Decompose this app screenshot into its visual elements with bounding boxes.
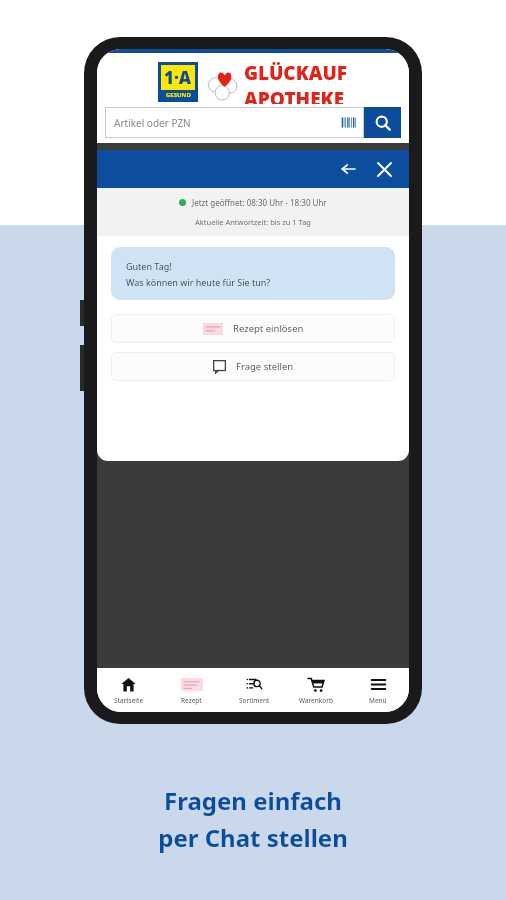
staticText: Startseite: [114, 696, 144, 705]
staticText: Jetzt geöffnet: 08:30 Uhr - 18:30 Uhr: [192, 197, 327, 208]
staticText: APOTHEKE: [244, 86, 345, 104]
button[interactable]: Frage stellen: [111, 352, 395, 381]
button[interactable]: Schließen: [372, 157, 396, 181]
button[interactable]: Zurück: [336, 157, 360, 181]
button[interactable]: Menü: [347, 668, 409, 712]
button[interactable]: Sortiment: [223, 668, 285, 712]
staticText: Warenkorb: [299, 696, 333, 705]
staticText: GESUND: [166, 91, 191, 99]
staticText: Frage stellen: [236, 360, 294, 373]
button[interactable]: Suchen: [364, 107, 401, 138]
staticText: GLÜCKAUF: [244, 60, 348, 86]
staticText: Rezept einlösen: [233, 322, 304, 335]
staticText: Fragen einfach: [164, 784, 342, 817]
button[interactable]: Rezept: [160, 668, 223, 712]
staticText: Artikel oder PZN: [114, 116, 191, 130]
staticText: Sortiment: [239, 696, 270, 705]
staticText: per Chat stellen: [158, 821, 348, 854]
staticText: Was können wir heute für Sie tun?: [126, 276, 271, 288]
staticText: Rezept: [181, 696, 202, 705]
button[interactable]: Rezept einlösen: [111, 314, 395, 343]
button[interactable]: Startseite: [97, 668, 160, 712]
staticText: Aktuelle Antwortzeit: bis zu 1 Tag: [195, 217, 311, 227]
button[interactable]: Warenkorb: [285, 668, 347, 712]
staticText: Guten Tag!: [126, 260, 172, 272]
staticText: 1·A: [164, 66, 192, 89]
button[interactable]: Artikel oder PZN: [105, 107, 364, 138]
staticText: Menü: [369, 696, 387, 705]
other: Barcode scannen: [340, 114, 357, 131]
